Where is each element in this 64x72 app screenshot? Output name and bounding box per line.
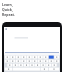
staticText: Repeat. (2, 12, 15, 17)
button[interactable] (4, 27, 60, 72)
staticText: Learn, (2, 2, 13, 7)
staticText: Quick, (2, 7, 13, 12)
